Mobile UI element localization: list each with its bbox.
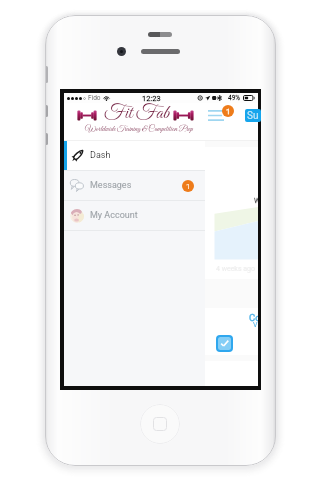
staticText: W [254,197,258,205]
button[interactable]: Su [245,109,261,122]
button[interactable]: My Account [64,201,205,230]
staticText: Fit Fab [104,101,170,126]
staticText: 12:23 [142,94,161,103]
staticText: Dash [90,150,111,161]
staticText: Messages [90,180,132,191]
button[interactable]: Dash [64,141,205,170]
staticText: Fido [88,94,101,102]
staticText: 4 weeks ago [216,265,255,273]
staticText: Su [247,110,259,122]
staticText: 1 [186,182,191,191]
staticText: My Account [90,210,138,221]
staticText: Co [249,312,258,323]
staticText: 1 [226,107,231,116]
staticText: Worldwide Training & Competition Prep [85,124,193,134]
button[interactable]: Messages [64,171,205,200]
button[interactable]: Completed checkbox [216,335,233,352]
staticText: 49% [228,94,241,102]
button[interactable]: Open navigation menu [205,107,233,127]
staticText: V [253,321,258,329]
